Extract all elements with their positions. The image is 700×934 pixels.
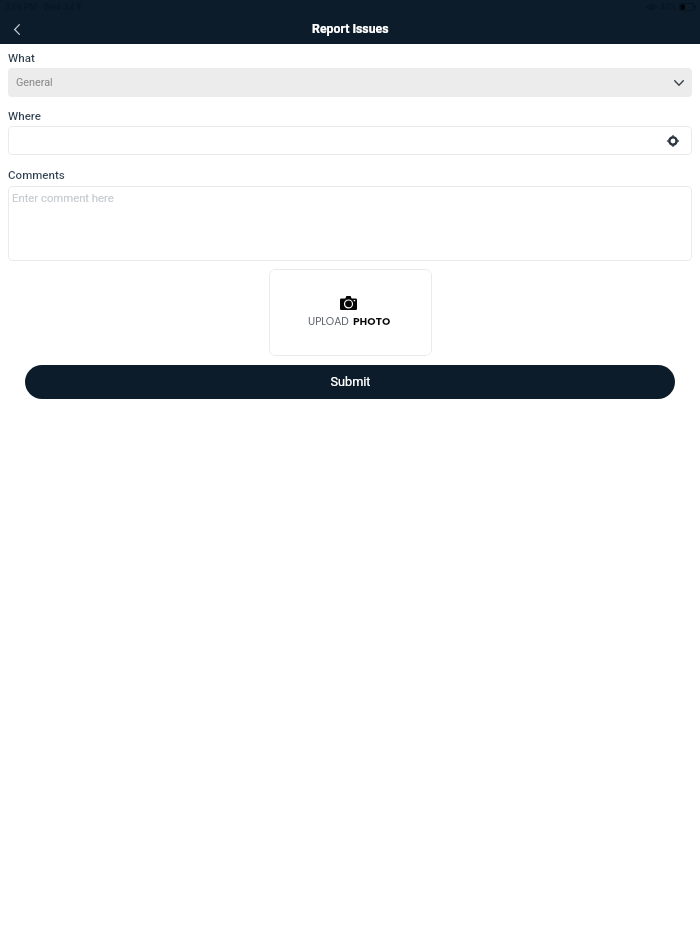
staticText: Report Issues bbox=[312, 22, 389, 36]
button[interactable]: Submit bbox=[25, 365, 675, 399]
staticText: Enter comment here bbox=[12, 192, 114, 205]
staticText: Where bbox=[8, 109, 42, 123]
staticText: Comments bbox=[8, 168, 65, 182]
staticText: UPLOAD bbox=[308, 314, 349, 329]
staticText: General bbox=[16, 76, 53, 89]
staticText: Submit bbox=[330, 374, 371, 389]
button[interactable]: General bbox=[8, 68, 692, 97]
button[interactable]: Use current location bbox=[8, 126, 692, 155]
button[interactable]: Enter comment here bbox=[8, 186, 692, 261]
button[interactable]: UPLOAD bbox=[269, 269, 432, 356]
button[interactable]: Use current location bbox=[665, 133, 681, 149]
staticText: PHOTO bbox=[353, 314, 391, 329]
staticText: What bbox=[8, 51, 35, 65]
button[interactable]: Back bbox=[1, 14, 32, 45]
